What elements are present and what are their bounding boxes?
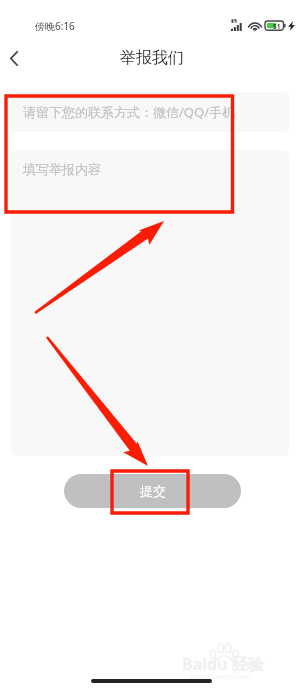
staticText: Baidu 经验 [182,653,264,675]
staticText: 51 [273,22,281,31]
staticText: 举报我们 [120,48,184,68]
button[interactable]: 提交 [64,474,241,508]
button[interactable]: 请留下您的联系方式：微信/QQ/手机 [11,92,289,132]
staticText: jingyan.baidu.com [190,672,251,682]
staticText: 请留下您的联系方式：微信/QQ/手机 [23,103,235,121]
button[interactable]: 填写举报内容 [11,150,289,456]
button[interactable]: Back [0,40,30,74]
staticText: 提交 [140,483,166,499]
staticText: 傍晚6:16 [35,19,75,33]
staticText: 填写举报内容 [23,161,101,177]
